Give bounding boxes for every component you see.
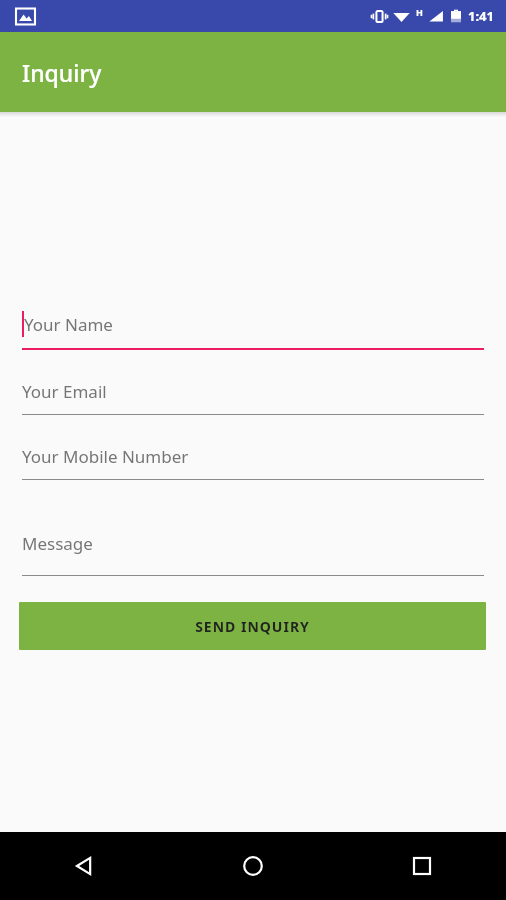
staticText: Message bbox=[22, 532, 93, 555]
staticText: H bbox=[416, 6, 423, 18]
staticText: Your Mobile Number bbox=[22, 445, 189, 468]
staticText: 1:41 bbox=[468, 7, 494, 25]
staticText: Inquiry bbox=[22, 57, 102, 88]
button[interactable]: SEND INQUIRY bbox=[19, 602, 486, 650]
staticText: Your Name bbox=[24, 313, 113, 336]
button[interactable]: Back bbox=[0, 832, 168, 900]
staticText: SEND INQUIRY bbox=[195, 617, 310, 636]
button[interactable]: Home bbox=[168, 832, 337, 900]
button[interactable]: Your Mobile Number bbox=[0, 445, 506, 480]
staticText: Your Email bbox=[22, 380, 107, 403]
button[interactable]: Your Name bbox=[0, 311, 506, 350]
button[interactable]: Message bbox=[0, 532, 506, 576]
button[interactable]: Your Email bbox=[0, 380, 506, 415]
button[interactable]: Recent apps bbox=[337, 832, 506, 900]
